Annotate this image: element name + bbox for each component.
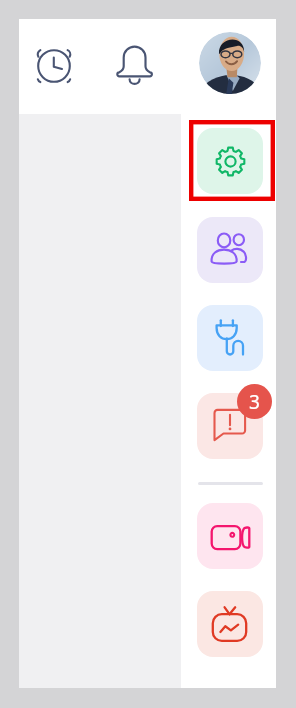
button[interactable]: Devices <box>197 305 263 371</box>
button[interactable]: Video <box>197 503 263 569</box>
staticText: 3 <box>249 389 260 415</box>
button[interactable]: Alerts <box>197 393 263 459</box>
button[interactable]: TV <box>197 591 263 657</box>
button[interactable]: Notifications <box>113 43 157 87</box>
button[interactable]: Profile <box>199 32 261 94</box>
button[interactable]: Settings <box>189 120 275 201</box>
button[interactable]: People <box>197 217 263 283</box>
button[interactable]: Alarm <box>33 44 75 86</box>
